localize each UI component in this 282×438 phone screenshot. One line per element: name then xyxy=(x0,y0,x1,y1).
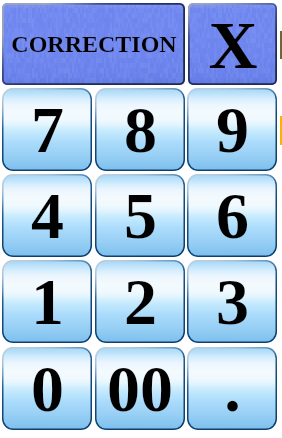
button[interactable]: 9 xyxy=(187,88,277,171)
button[interactable]: 1 xyxy=(2,260,92,343)
staticText: . xyxy=(224,352,241,425)
button[interactable]: 5 xyxy=(95,174,185,257)
button[interactable]: 7 xyxy=(2,88,92,171)
button[interactable]: 4 xyxy=(2,174,92,257)
button[interactable]: 2 xyxy=(95,260,185,343)
staticText: 9 xyxy=(216,93,249,166)
staticText: 4 xyxy=(31,179,64,252)
button[interactable]: 0 xyxy=(2,347,92,430)
button[interactable]: CORRECTION xyxy=(2,3,185,85)
staticText: 5 xyxy=(124,179,157,252)
staticText: 00 xyxy=(107,352,173,425)
button[interactable]: . xyxy=(187,347,277,430)
staticText: 0 xyxy=(31,352,64,425)
staticText: 2 xyxy=(124,265,157,338)
button[interactable]: 3 xyxy=(187,260,277,343)
staticText: 1 xyxy=(31,265,64,338)
button[interactable]: 00 xyxy=(95,347,185,430)
staticText: CORRECTION xyxy=(11,31,177,58)
staticText: 6 xyxy=(216,179,249,252)
staticText: 7 xyxy=(31,93,64,166)
button[interactable]: 6 xyxy=(187,174,277,257)
button[interactable]: X xyxy=(188,3,277,85)
staticText: 3 xyxy=(216,265,249,338)
staticText: X xyxy=(208,7,258,82)
button[interactable]: 8 xyxy=(95,88,185,171)
staticText: 8 xyxy=(124,93,157,166)
